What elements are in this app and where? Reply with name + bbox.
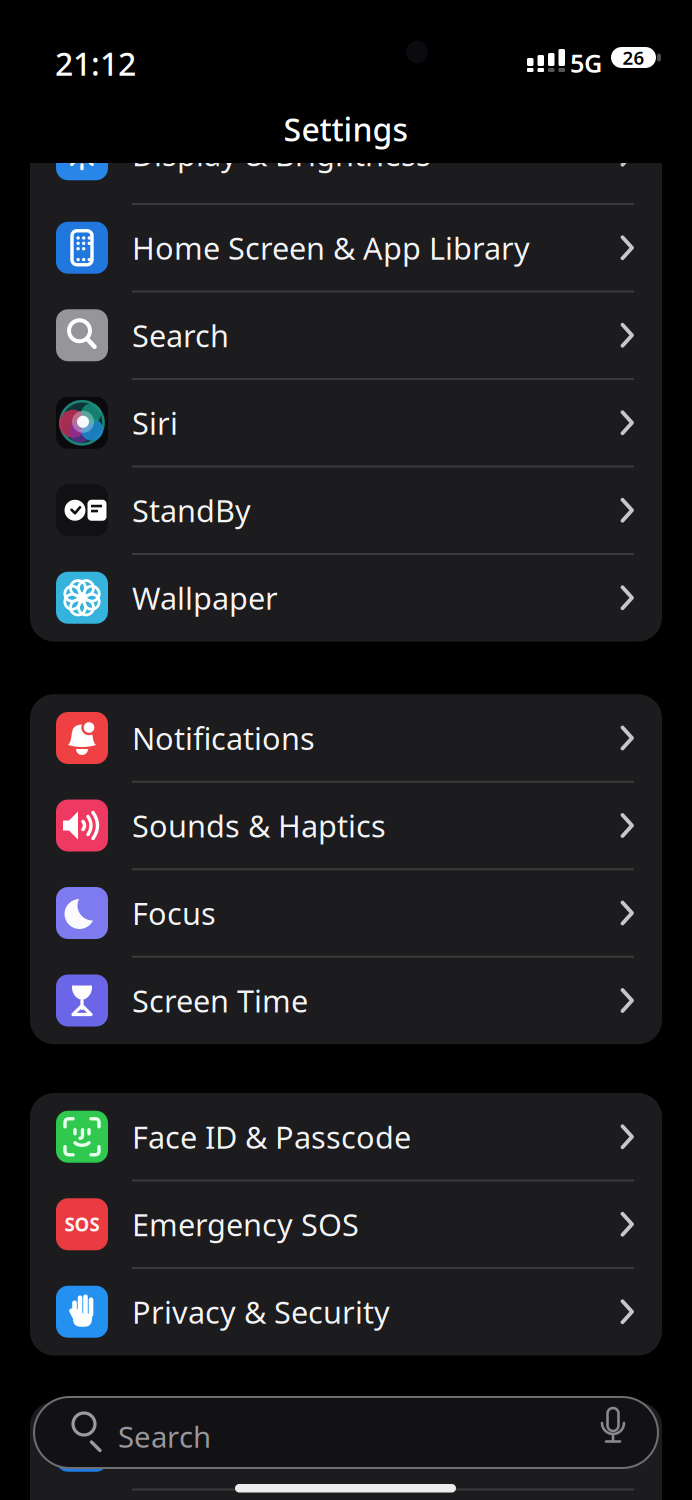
button[interactable]: Face ID & Passcode	[30, 1093, 662, 1180]
button[interactable]: Focus	[30, 869, 662, 957]
button[interactable]: Home Screen & App Library	[30, 204, 662, 291]
staticText: Search	[132, 315, 229, 356]
staticText: Sounds & Haptics	[132, 805, 386, 846]
staticText: Search	[118, 1417, 211, 1456]
staticText: Emergency SOS	[132, 1204, 359, 1245]
button[interactable]: Display & Brightness	[30, 116, 662, 204]
staticText: 26	[622, 45, 644, 70]
staticText: Screen Time	[132, 980, 308, 1021]
button[interactable]: Siri	[30, 379, 662, 466]
button[interactable]: Wallpaper	[30, 554, 662, 641]
button[interactable]: Screen Time	[30, 957, 662, 1044]
staticText: Siri	[132, 402, 178, 443]
staticText: 21:12	[55, 42, 136, 84]
staticText: Display & Brightness	[132, 134, 431, 175]
staticText: Face ID & Passcode	[132, 1116, 411, 1157]
button[interactable]: Search	[30, 291, 662, 379]
staticText: App Store	[132, 1425, 274, 1466]
staticText: Focus	[132, 893, 216, 933]
staticText: Wallpaper	[132, 577, 278, 618]
staticText: Privacy & Security	[132, 1291, 390, 1332]
button[interactable]: Sounds & Haptics	[30, 782, 662, 869]
button[interactable]: Notifications	[30, 694, 662, 782]
staticText: StandBy	[132, 490, 251, 531]
staticText: Home Screen & App Library	[132, 227, 530, 268]
staticText: SOS	[64, 1212, 99, 1237]
button[interactable]: App Store	[30, 1402, 662, 1489]
button[interactable]: SOS	[30, 1180, 662, 1268]
button[interactable]	[30, 1489, 662, 1500]
button[interactable]: Search	[34, 1397, 658, 1468]
staticText: 5G	[570, 46, 602, 80]
button[interactable]: Privacy & Security	[30, 1268, 662, 1355]
staticText: Settings	[283, 108, 408, 150]
staticText: Notifications	[132, 718, 315, 758]
button[interactable]: StandBy	[30, 466, 662, 554]
